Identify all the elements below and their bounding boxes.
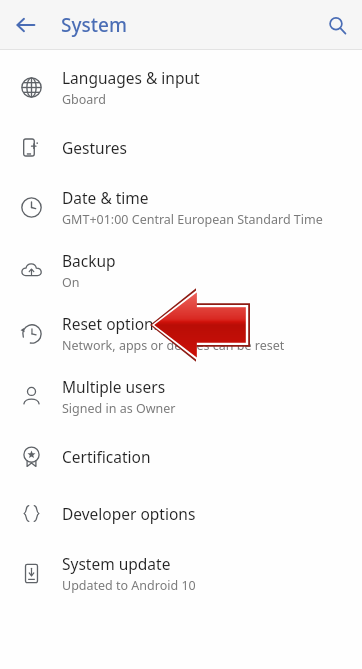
button[interactable]: Multiple users bbox=[0, 365, 362, 428]
button[interactable]: Developer options bbox=[0, 485, 362, 542]
staticText: Updated to Android 10 bbox=[62, 577, 196, 594]
staticText: Multiple users bbox=[62, 376, 166, 397]
staticText: Certification bbox=[62, 446, 151, 467]
button[interactable]: Back bbox=[10, 9, 42, 41]
button[interactable]: Reset options bbox=[0, 302, 362, 365]
staticText: Date & time bbox=[62, 187, 149, 208]
staticText: System update bbox=[62, 553, 171, 574]
staticText: GMT+01:00 Central European Standard Time bbox=[62, 211, 323, 228]
staticText: Languages & input bbox=[62, 67, 200, 88]
staticText: Gboard bbox=[62, 91, 106, 108]
staticText: Backup bbox=[62, 250, 116, 271]
staticText: Reset options bbox=[62, 313, 162, 334]
staticText: Network, apps or devices can be reset bbox=[62, 337, 285, 354]
button[interactable]: Search bbox=[320, 8, 354, 42]
button[interactable]: Gestures bbox=[0, 119, 362, 176]
staticText: Signed in as Owner bbox=[62, 400, 176, 417]
button[interactable]: Certification bbox=[0, 428, 362, 485]
button[interactable]: Date & time bbox=[0, 176, 362, 239]
button[interactable]: System update bbox=[0, 542, 362, 605]
staticText: Gestures bbox=[62, 137, 127, 158]
button[interactable]: Backup bbox=[0, 239, 362, 302]
button[interactable]: Languages & input bbox=[0, 56, 362, 119]
staticText: Developer options bbox=[62, 503, 196, 524]
staticText: System bbox=[61, 12, 127, 38]
staticText: On bbox=[62, 274, 80, 291]
